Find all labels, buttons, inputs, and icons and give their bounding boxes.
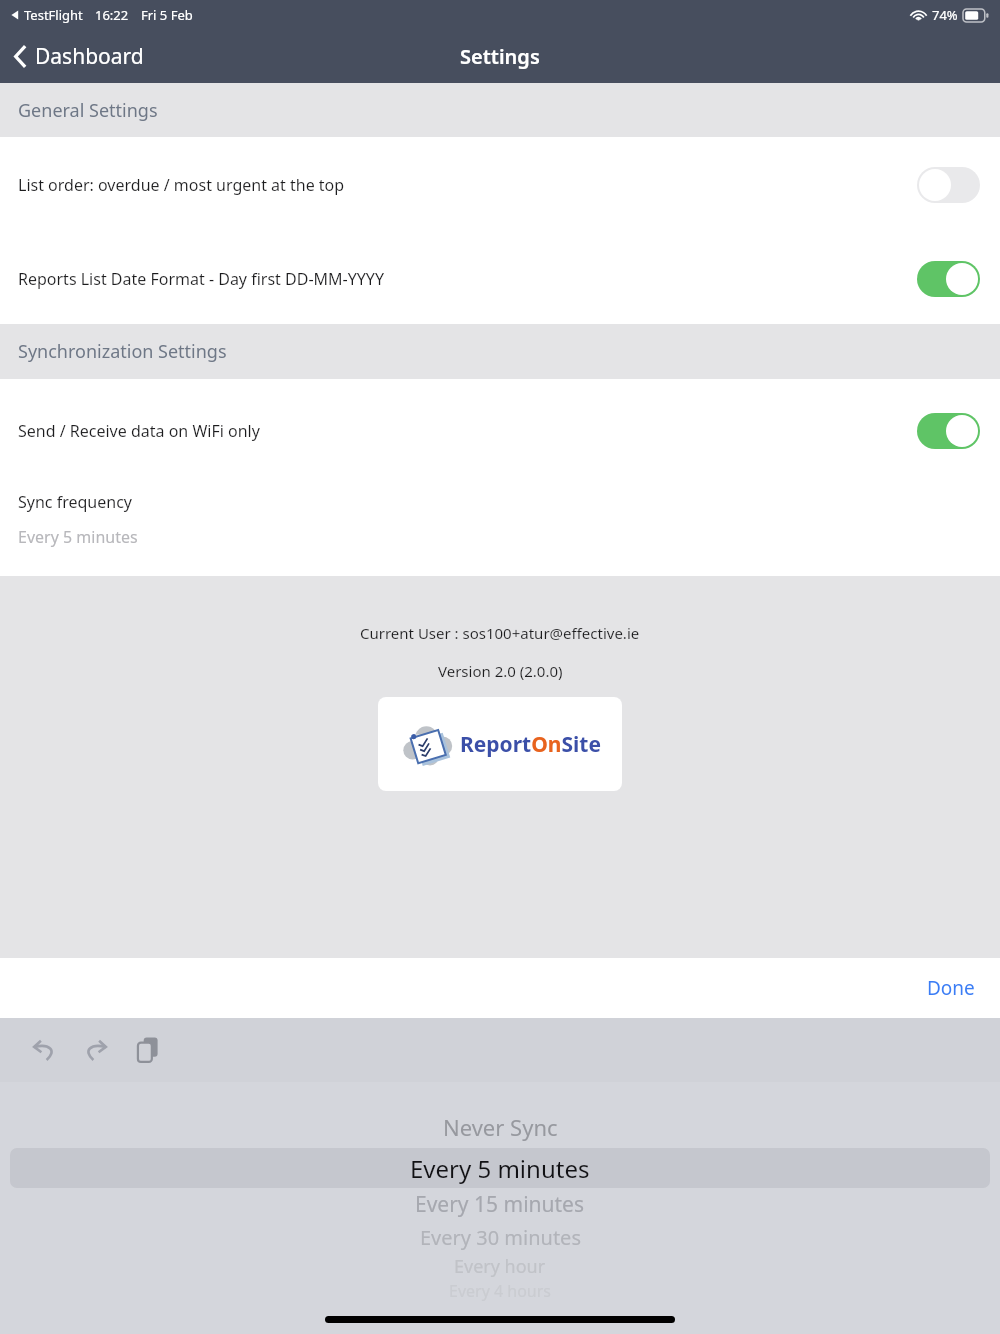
button[interactable]: Every 5 minutes [10, 1148, 990, 1188]
staticText: Current User : sos100+atur@effective.ie [360, 623, 640, 643]
staticText: Sync frequency [18, 491, 132, 513]
staticText: Settings [460, 43, 540, 70]
staticText: Synchronization Settings [18, 339, 227, 364]
button[interactable]: Sync frequency [0, 482, 1000, 576]
button[interactable]: Every 15 minutes [415, 1190, 585, 1219]
button[interactable]: Undo [22, 1028, 66, 1072]
staticText: ReportOnSite [460, 730, 601, 759]
staticText: General Settings [18, 98, 158, 123]
button[interactable]: Done [902, 962, 1000, 1014]
staticText: Never Sync [443, 1112, 558, 1142]
button[interactable]: Every hour [454, 1254, 546, 1279]
staticText: Reports List Date Format - Day first DD-… [18, 268, 917, 290]
button[interactable]: Send / Receive data on WiFi only [0, 379, 1000, 482]
staticText: Send / Receive data on WiFi only [18, 420, 917, 442]
staticText: Fri 5 Feb [141, 6, 193, 24]
button[interactable]: Reports List Date Format - Day first DD-… [0, 233, 1000, 324]
staticText: List order: overdue / most urgent at the… [18, 174, 917, 196]
button[interactable]: ReportOnSite [378, 697, 622, 791]
staticText: Done [927, 975, 975, 1001]
staticText: 16:22 [95, 6, 129, 24]
staticText: 74% [932, 6, 958, 24]
button[interactable]: Every 4 hours [449, 1280, 552, 1302]
other: On [917, 413, 980, 449]
staticText: TestFlight [24, 6, 83, 24]
button[interactable]: Dashboard [8, 35, 150, 78]
button[interactable]: List order: overdue / most urgent at the… [0, 137, 1000, 233]
other: On [917, 261, 980, 297]
other: Off [917, 167, 980, 203]
staticText: Dashboard [35, 42, 144, 71]
staticText: Every 5 minutes [410, 1152, 590, 1185]
button[interactable]: Redo [74, 1028, 118, 1072]
button[interactable]: Paste [126, 1028, 170, 1072]
staticText: Every 5 minutes [18, 526, 138, 548]
button[interactable]: Every 30 minutes [420, 1224, 581, 1251]
staticText: Version 2.0 (2.0.0) [438, 661, 563, 681]
